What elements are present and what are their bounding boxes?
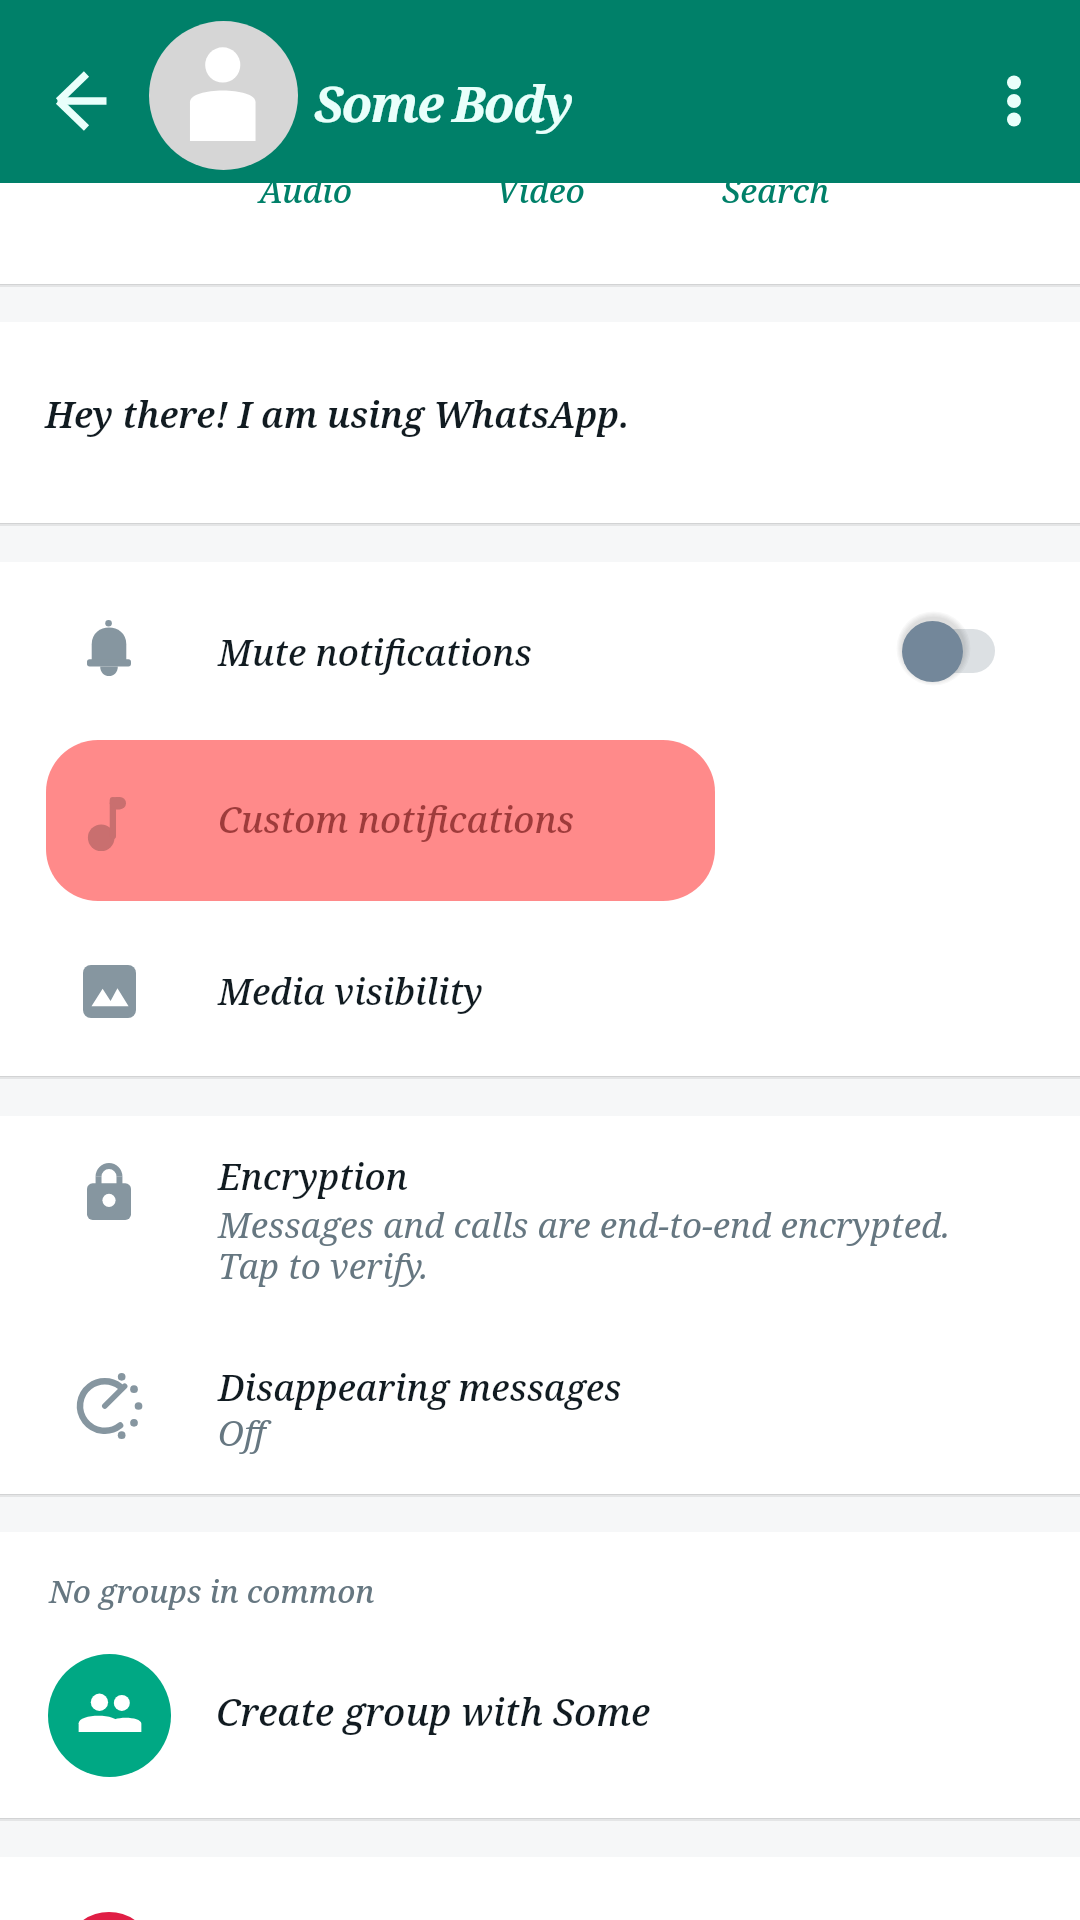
staticText: Custom notifications xyxy=(218,795,574,844)
button[interactable]: Video xyxy=(423,168,658,238)
button[interactable]: Search xyxy=(658,168,893,238)
staticText: Messages and calls are end-to-end encryp… xyxy=(218,1201,950,1289)
staticText: Media visibility xyxy=(218,967,483,1016)
button[interactable]: Profile photo xyxy=(149,21,298,170)
button[interactable]: Encryption xyxy=(0,1116,1080,1361)
button[interactable]: Audio xyxy=(188,168,423,238)
button[interactable]: Create group with Some xyxy=(0,1633,1080,1797)
staticText: Encryption xyxy=(218,1152,408,1201)
staticText: Audio xyxy=(259,168,353,213)
button[interactable]: Hey there! I am using WhatsApp. xyxy=(0,322,1080,523)
staticText: Disappearing messages xyxy=(218,1363,622,1412)
button[interactable]: Custom notifications xyxy=(46,740,715,901)
staticText: Create group with Some xyxy=(216,1685,651,1737)
button[interactable]: More options xyxy=(959,46,1069,156)
button[interactable]: Mute notifications xyxy=(0,562,1080,728)
button[interactable]: Media visibility xyxy=(0,901,1080,1076)
staticText: Hey there! I am using WhatsApp. xyxy=(45,390,630,439)
button[interactable]: Back xyxy=(27,46,137,156)
staticText: Body xyxy=(452,69,572,137)
staticText: Off xyxy=(218,1409,266,1457)
button[interactable]: Block Some Body xyxy=(0,1857,1080,1920)
staticText: Mute notifications xyxy=(218,628,532,677)
button[interactable]: Disappearing messages xyxy=(0,1361,1080,1494)
staticText: Some xyxy=(314,69,443,137)
staticText: Search xyxy=(722,168,830,213)
staticText: No groups in common xyxy=(49,1570,375,1612)
staticText: Video xyxy=(496,168,585,213)
